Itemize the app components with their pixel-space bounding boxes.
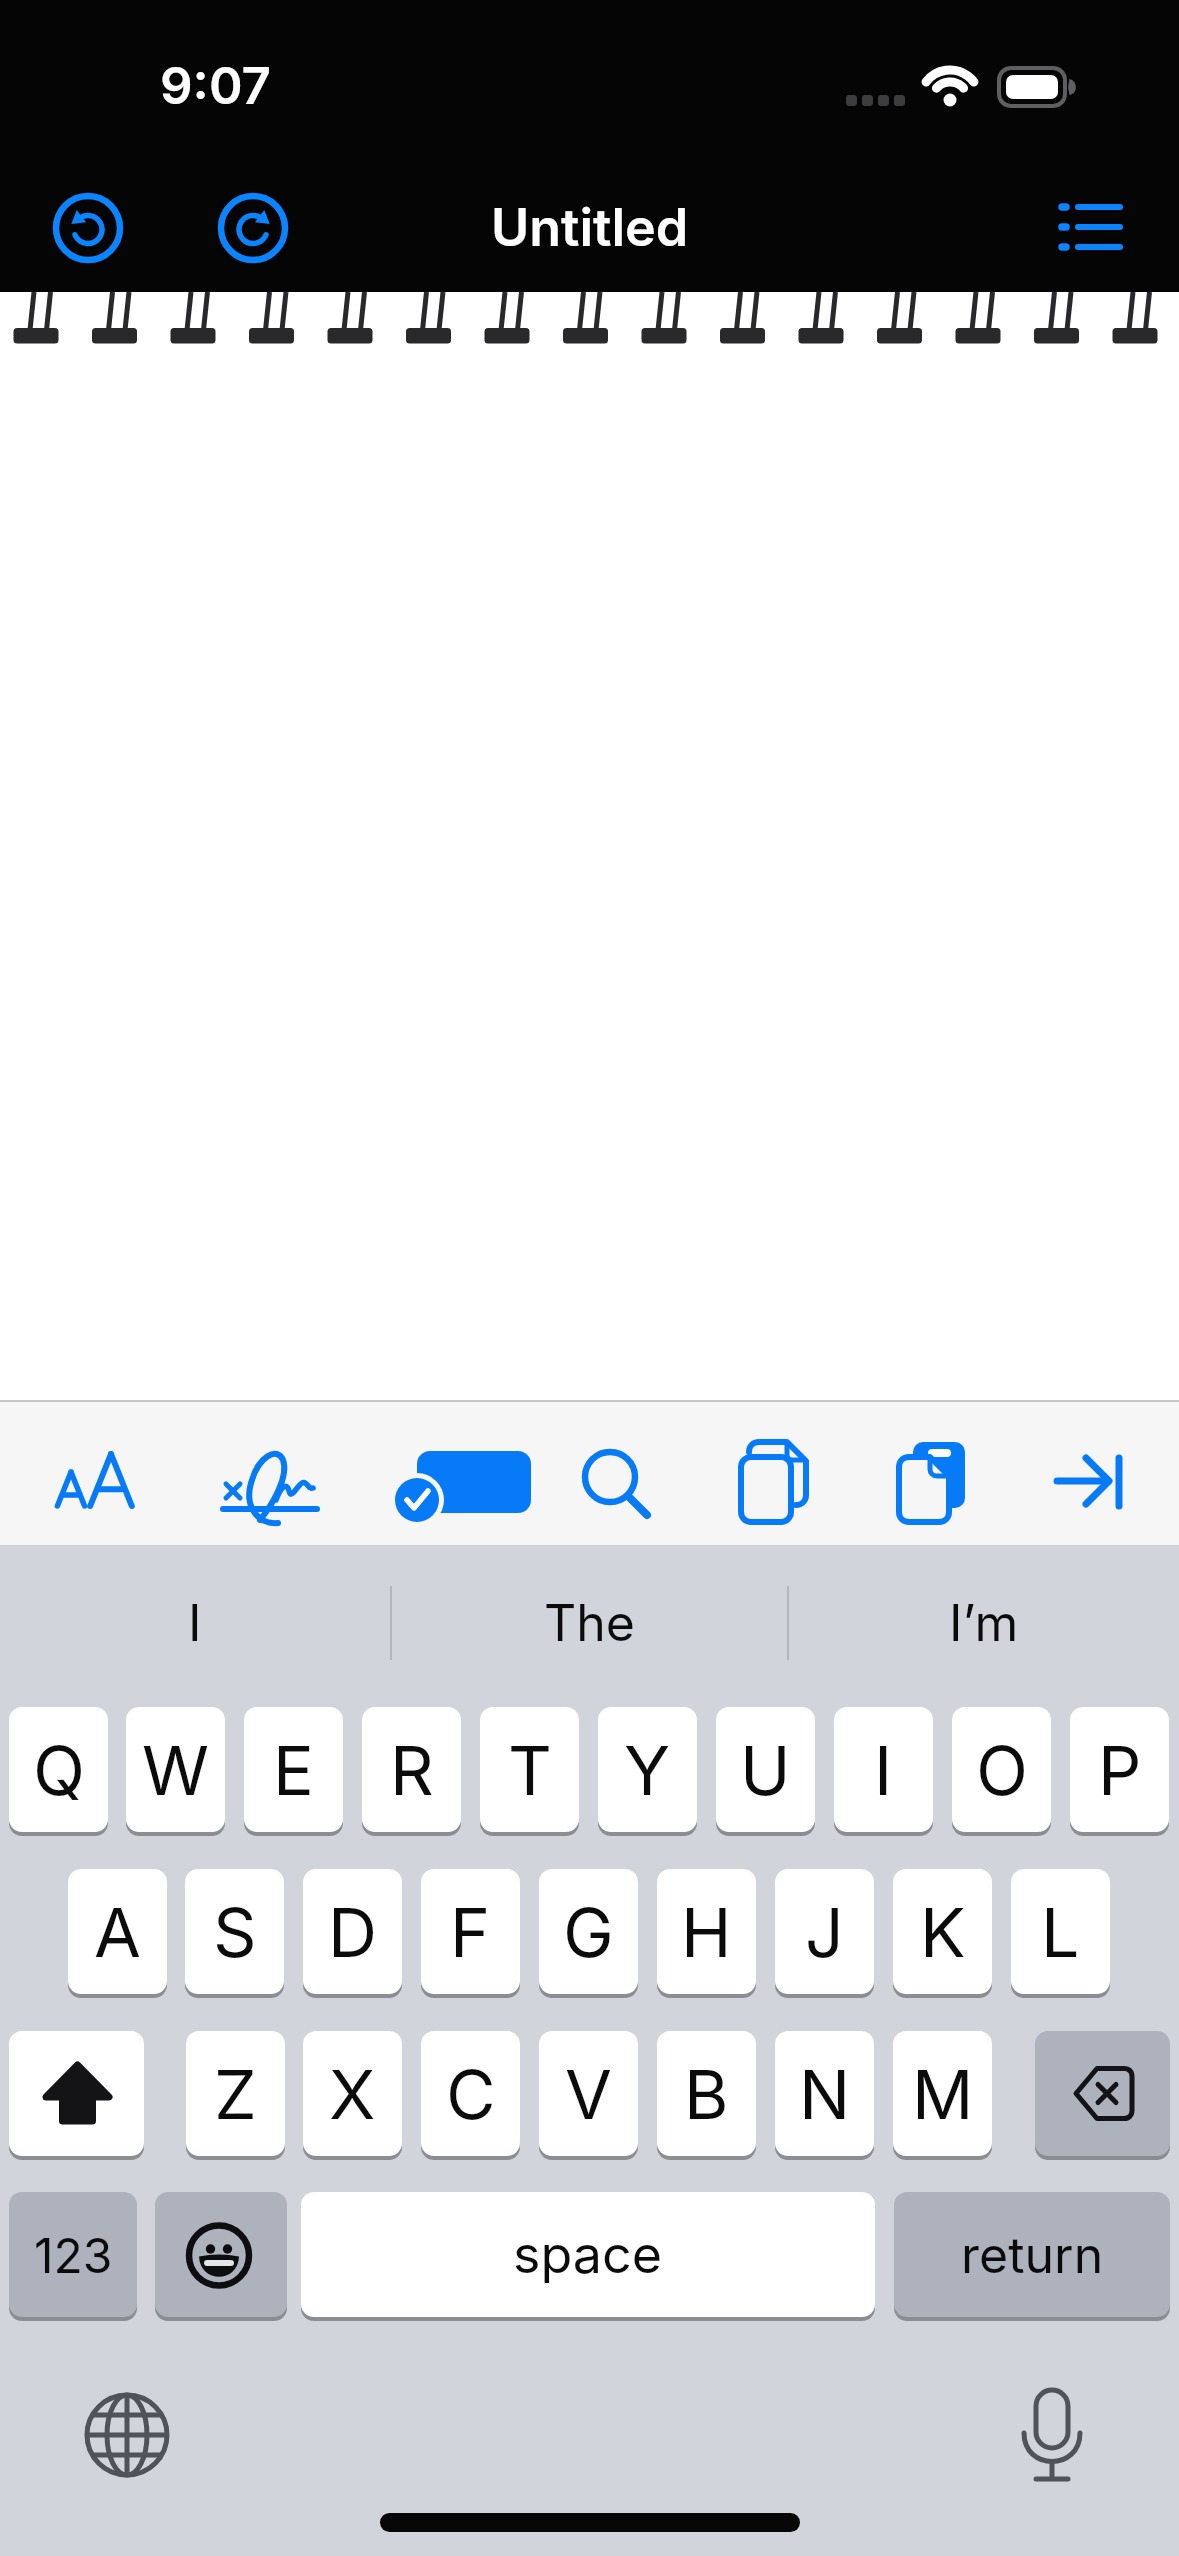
button[interactable]: Y (598, 1707, 697, 1832)
button[interactable]: V (539, 2031, 638, 2156)
staticText: T (508, 1729, 552, 1811)
button[interactable]: X (303, 2031, 402, 2156)
button[interactable]: D (303, 1869, 402, 1994)
staticText: A (94, 1891, 141, 1973)
staticText: F (450, 1891, 491, 1973)
staticText: K (920, 1891, 966, 1973)
button[interactable]: I’m (788, 1586, 1179, 1660)
button[interactable] (155, 2192, 287, 2317)
button[interactable] (52, 192, 124, 264)
staticText: Z (214, 2053, 257, 2135)
button[interactable]: A (68, 1869, 167, 1994)
staticText: 9:07 (160, 55, 271, 110)
button[interactable]: W (126, 1707, 225, 1832)
staticText: Q (33, 1729, 85, 1811)
button[interactable]: G (539, 1869, 638, 1994)
staticText: O (976, 1729, 1028, 1811)
button[interactable] (42, 1430, 142, 1520)
button[interactable] (730, 1430, 825, 1530)
button[interactable]: R (362, 1707, 461, 1832)
button[interactable]: E (244, 1707, 343, 1832)
staticText: N (799, 2053, 851, 2135)
staticText: Untitled (491, 196, 689, 258)
staticText: H (681, 1891, 732, 1973)
button[interactable]: U (716, 1707, 815, 1832)
staticText: I’m (949, 1593, 1019, 1653)
staticText: D (328, 1891, 378, 1973)
button[interactable]: S (185, 1869, 284, 1994)
button[interactable] (1007, 2385, 1097, 2490)
button[interactable]: L (1011, 1869, 1110, 1994)
button[interactable]: N (775, 2031, 874, 2156)
button[interactable] (570, 1435, 665, 1530)
staticText: G (563, 1891, 614, 1973)
staticText: I (874, 1729, 893, 1811)
button[interactable]: Q (9, 1707, 108, 1832)
staticText: M (912, 2053, 974, 2135)
button[interactable]: K (893, 1869, 992, 1994)
staticText: B (684, 2053, 729, 2135)
staticText: J (805, 1891, 844, 1973)
staticText: L (1041, 1891, 1080, 1973)
staticText: P (1098, 1729, 1142, 1811)
button[interactable]: F (421, 1869, 520, 1994)
staticText: The (544, 1593, 635, 1653)
button[interactable]: The (392, 1586, 786, 1660)
staticText: R (390, 1729, 434, 1811)
button[interactable] (215, 1430, 325, 1525)
button[interactable]: space (301, 2192, 875, 2317)
staticText: V (565, 2053, 612, 2135)
staticText: E (273, 1729, 314, 1811)
button[interactable]: 123 (9, 2192, 137, 2317)
button[interactable]: I (0, 1586, 390, 1660)
button[interactable] (1035, 2031, 1170, 2156)
staticText: U (740, 1729, 791, 1811)
button[interactable] (1040, 1435, 1140, 1525)
button[interactable] (9, 2031, 144, 2156)
staticText: return (961, 2225, 1104, 2285)
staticText: I (188, 1593, 202, 1653)
button[interactable]: return (894, 2192, 1170, 2317)
staticText: 123 (34, 2226, 113, 2284)
button[interactable] (392, 1430, 537, 1525)
button[interactable]: M (893, 2031, 992, 2156)
staticText: space (513, 2223, 663, 2286)
button[interactable]: H (657, 1869, 756, 1994)
button[interactable]: C (421, 2031, 520, 2156)
button[interactable]: P (1070, 1707, 1169, 1832)
button[interactable]: I (834, 1707, 933, 1832)
button[interactable] (217, 192, 289, 264)
staticText: X (329, 2053, 376, 2135)
button[interactable] (1043, 186, 1143, 270)
button[interactable]: J (775, 1869, 874, 1994)
button[interactable]: O (952, 1707, 1051, 1832)
button[interactable]: B (657, 2031, 756, 2156)
staticText: S (213, 1891, 257, 1973)
staticText: Y (624, 1729, 671, 1811)
staticText: W (142, 1729, 210, 1811)
button[interactable]: T (480, 1707, 579, 1832)
button[interactable] (82, 2390, 172, 2480)
button[interactable]: Z (186, 2031, 285, 2156)
button[interactable] (888, 1430, 983, 1530)
staticText: C (446, 2053, 496, 2135)
